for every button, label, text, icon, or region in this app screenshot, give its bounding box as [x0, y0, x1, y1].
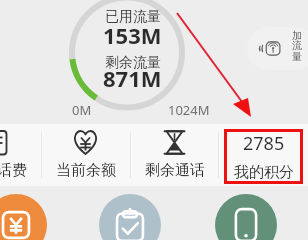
- staticText: 0M: [72, 101, 92, 119]
- staticText: 已用流量: [105, 8, 161, 26]
- button[interactable]: 手机: [215, 194, 277, 240]
- button[interactable]: 我的话费: [0, 124, 41, 186]
- staticText: 我的话费: [0, 161, 27, 180]
- staticText: 流: [292, 39, 302, 52]
- staticText: 2785: [243, 131, 285, 156]
- button[interactable]: 当前余额: [41, 124, 130, 186]
- staticText: 加: [292, 29, 302, 42]
- button[interactable]: 剩余通话: [130, 124, 219, 186]
- button[interactable]: 加流量: [247, 27, 308, 70]
- staticText: 我的积分: [234, 163, 294, 182]
- staticText: 量: [292, 50, 302, 63]
- other: 加流量: [259, 41, 281, 56]
- staticText: 剩余流量: [105, 54, 161, 72]
- button[interactable]: 2785: [219, 124, 308, 186]
- staticText: 871M: [103, 63, 162, 93]
- button[interactable]: 充值: [0, 194, 47, 240]
- staticText: 1024M: [168, 101, 210, 119]
- staticText: 当前余额: [56, 161, 116, 180]
- button[interactable]: 账单: [99, 194, 161, 240]
- staticText: 153M: [103, 20, 162, 50]
- staticText: 剩余通话: [145, 161, 205, 180]
